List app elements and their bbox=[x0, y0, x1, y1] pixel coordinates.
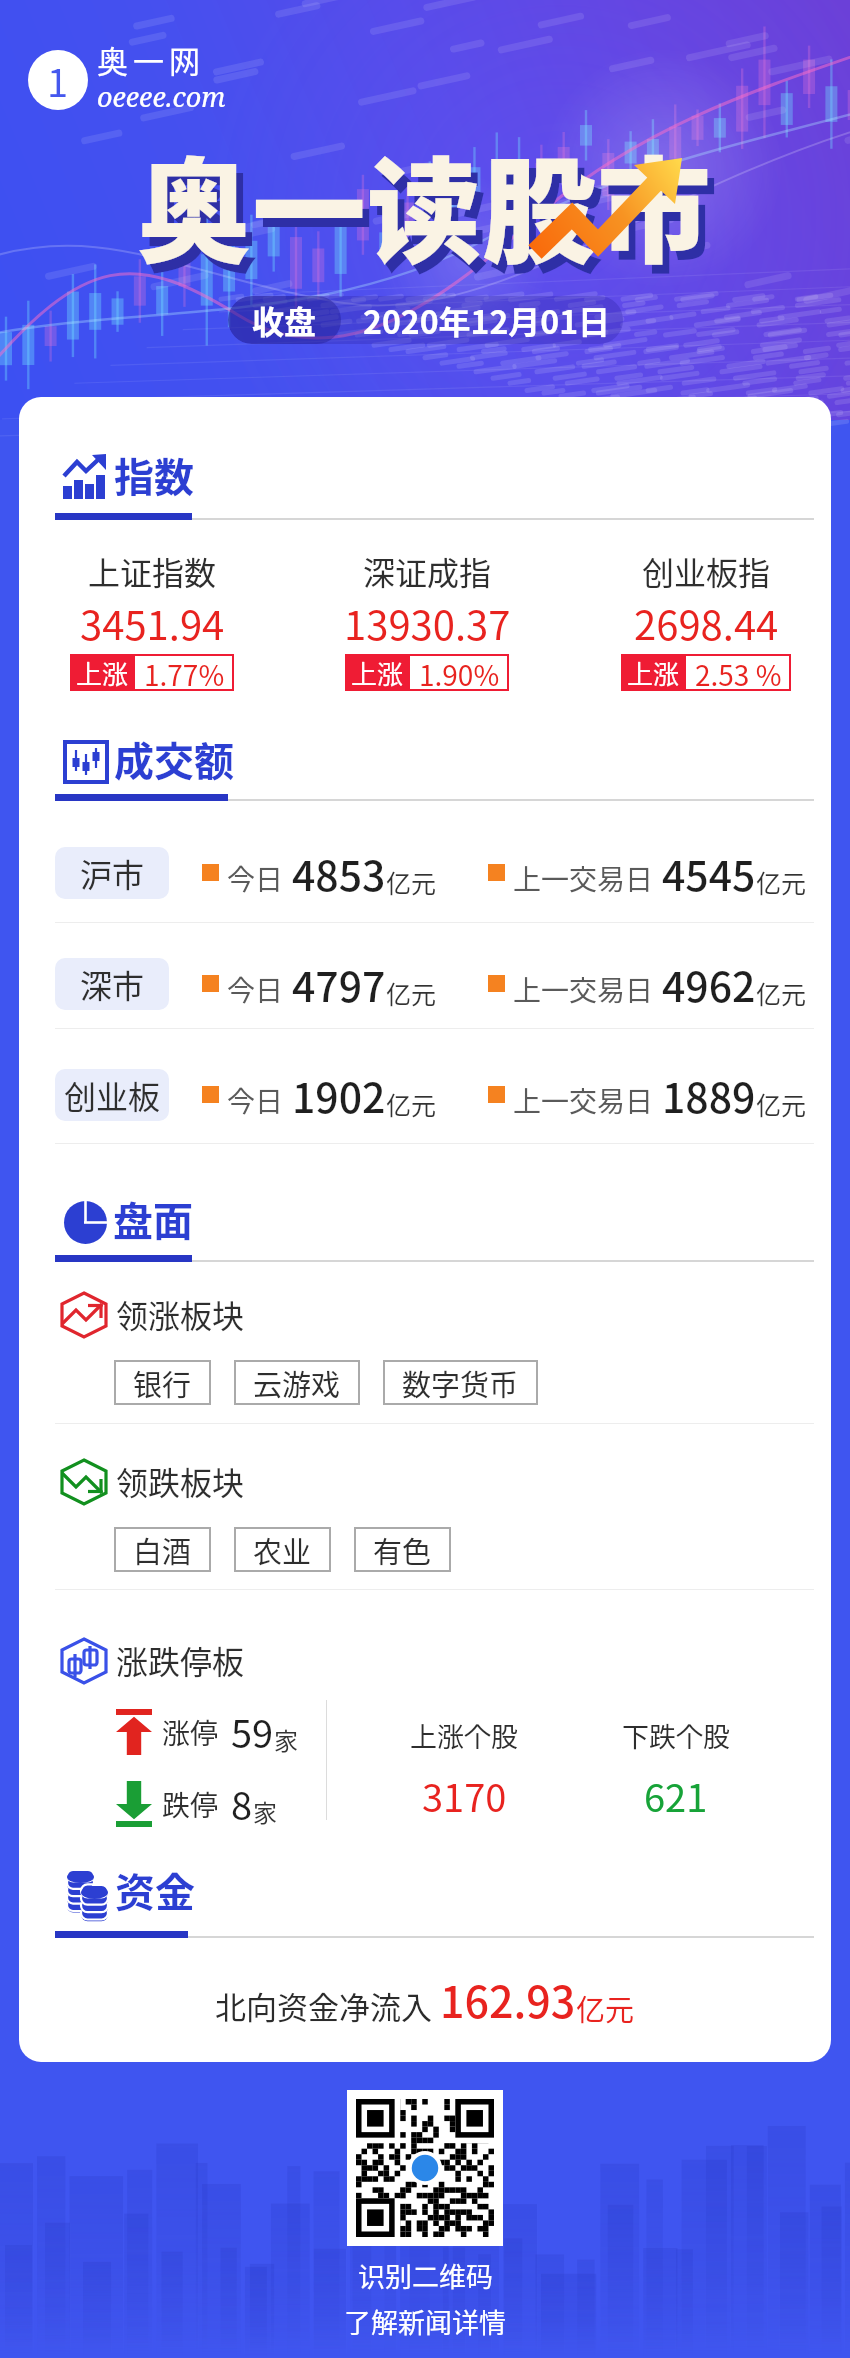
button[interactable]: 涨跌停板 bbox=[61, 1638, 245, 1684]
staticText: 亿元 bbox=[756, 1086, 807, 1122]
staticText: 奥一读股市 bbox=[144, 130, 720, 295]
staticText: 指数 bbox=[114, 446, 194, 504]
staticText: 了解新闻详情 bbox=[344, 2302, 506, 2341]
staticText: 3170 bbox=[422, 1768, 507, 1823]
staticText: 深市 bbox=[80, 961, 145, 1007]
staticText: 成交额 bbox=[114, 730, 234, 788]
button[interactable] bbox=[0, 958, 850, 1010]
staticText: 2020年12月01日 bbox=[363, 297, 611, 343]
staticText: 深证成指 bbox=[363, 548, 492, 594]
staticText: 收盘 bbox=[252, 297, 317, 343]
button[interactable]: 领跌板块 bbox=[61, 1459, 245, 1505]
staticText: 农业 bbox=[253, 1529, 312, 1571]
button[interactable]: 涨停 bbox=[116, 1704, 298, 1759]
staticText: 1.90% bbox=[419, 654, 500, 691]
button[interactable]: 指数 bbox=[63, 449, 194, 507]
staticText: 1.77% bbox=[144, 654, 225, 691]
staticText: 今日 bbox=[227, 969, 284, 1010]
button[interactable]: 白酒 bbox=[114, 1527, 211, 1572]
staticText: 1 bbox=[47, 53, 69, 108]
staticText: 4797 bbox=[292, 954, 386, 1013]
button[interactable]: 上证指数 bbox=[22, 548, 282, 691]
staticText: 创业板 bbox=[64, 1072, 161, 1118]
staticText: 家 bbox=[274, 1722, 298, 1757]
button[interactable]: 扫描二维码 bbox=[356, 2099, 494, 2237]
staticText: 亿元 bbox=[756, 975, 807, 1011]
button[interactable]: 1 bbox=[28, 39, 226, 121]
staticText: 2.53 % bbox=[695, 654, 782, 691]
button[interactable]: 创业板指 bbox=[576, 548, 836, 691]
staticText: 上一交易日 bbox=[513, 858, 654, 899]
staticText: 13930.37 bbox=[344, 594, 511, 652]
staticText: 跌停 bbox=[162, 1784, 219, 1825]
staticText: 今日 bbox=[227, 1080, 284, 1121]
staticText: 下跌个股 bbox=[622, 1716, 730, 1755]
staticText: 4545 bbox=[662, 843, 756, 902]
button[interactable]: 下跌个股 bbox=[581, 1716, 771, 1823]
staticText: 涨跌停板 bbox=[116, 1637, 245, 1683]
staticText: 4853 bbox=[292, 843, 386, 902]
staticText: 上证指数 bbox=[88, 548, 217, 594]
staticText: 白酒 bbox=[133, 1529, 192, 1571]
staticText: 3451.94 bbox=[80, 594, 225, 652]
staticText: 数字货币 bbox=[402, 1362, 519, 1404]
staticText: 1902 bbox=[292, 1065, 386, 1124]
staticText: 创业板指 bbox=[642, 548, 771, 594]
staticText: 亿元 bbox=[386, 864, 437, 900]
button[interactable]: 上涨个股 bbox=[369, 1716, 559, 1823]
staticText: 上涨 bbox=[351, 654, 404, 691]
button[interactable]: 资金 bbox=[63, 1864, 195, 1922]
button[interactable]: 深证成指 bbox=[297, 548, 557, 691]
staticText: 领涨板块 bbox=[116, 1291, 245, 1337]
staticText: 云游戏 bbox=[253, 1362, 341, 1404]
staticText: 621 bbox=[644, 1768, 708, 1823]
staticText: 银行 bbox=[133, 1362, 192, 1404]
staticText: 资金 bbox=[115, 1861, 195, 1919]
button[interactable]: 盘面 bbox=[63, 1193, 193, 1251]
staticText: 2698.44 bbox=[634, 594, 779, 652]
staticText: 59 bbox=[231, 1704, 274, 1759]
staticText: 8 bbox=[231, 1776, 253, 1831]
staticText: 识别二维码 bbox=[358, 2256, 493, 2295]
staticText: 4962 bbox=[662, 954, 756, 1013]
staticText: 上涨个股 bbox=[410, 1716, 518, 1755]
staticText: oeeee.com bbox=[97, 78, 226, 115]
staticText: 北向资金净流入 bbox=[215, 1983, 432, 2028]
staticText: 盘面 bbox=[113, 1190, 193, 1248]
staticText: 领跌板块 bbox=[116, 1458, 245, 1504]
button[interactable]: 收盘 bbox=[228, 296, 623, 344]
staticText: 上涨 bbox=[76, 654, 129, 691]
button[interactable] bbox=[0, 1069, 850, 1121]
staticText: 今日 bbox=[227, 858, 284, 899]
button[interactable]: 云游戏 bbox=[234, 1360, 360, 1405]
button[interactable]: 成交额 bbox=[63, 733, 234, 791]
staticText: 上一交易日 bbox=[513, 969, 654, 1010]
button[interactable]: 数字货币 bbox=[383, 1360, 538, 1405]
staticText: 亿元 bbox=[386, 975, 437, 1011]
button[interactable]: 跌停 bbox=[116, 1776, 277, 1831]
staticText: 沪市 bbox=[80, 850, 145, 896]
button[interactable]: 有色 bbox=[354, 1527, 451, 1572]
button[interactable]: 领涨板块 bbox=[61, 1292, 245, 1338]
staticText: 162.93 bbox=[440, 1968, 576, 2030]
staticText: 家 bbox=[253, 1794, 277, 1829]
staticText: 亿元 bbox=[576, 1987, 635, 2029]
staticText: 1889 bbox=[662, 1065, 756, 1124]
staticText: 奥一网 bbox=[97, 37, 205, 82]
staticText: 上涨 bbox=[627, 654, 680, 691]
button[interactable]: 银行 bbox=[114, 1360, 211, 1405]
staticText: 涨停 bbox=[162, 1712, 219, 1753]
staticText: 亿元 bbox=[386, 1086, 437, 1122]
staticText: 上一交易日 bbox=[513, 1080, 654, 1121]
staticText: 亿元 bbox=[756, 864, 807, 900]
button[interactable] bbox=[0, 847, 850, 899]
staticText: 奥一读股市 bbox=[137, 121, 713, 286]
button[interactable]: 农业 bbox=[234, 1527, 331, 1572]
staticText: 有色 bbox=[373, 1529, 432, 1571]
